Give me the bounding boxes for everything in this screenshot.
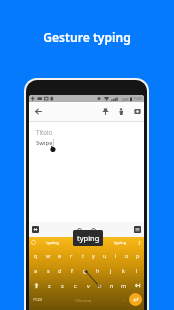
button[interactable]: j: [104, 263, 117, 278]
staticText: q: [34, 252, 38, 259]
button[interactable]: Back: [32, 105, 45, 118]
staticText: .: [123, 297, 125, 303]
button[interactable]: d: [54, 263, 66, 278]
staticText: x: [61, 282, 64, 289]
staticText: w: [46, 252, 51, 259]
button[interactable]: w: [42, 248, 54, 263]
staticText: s: [47, 267, 50, 274]
staticText: n: [110, 282, 114, 289]
button[interactable]: p: [132, 248, 143, 263]
staticText: e: [58, 252, 62, 259]
button[interactable]: Backspace: [130, 278, 144, 293]
button[interactable]: Pin: [99, 105, 112, 118]
button[interactable]: Chroma: [54, 293, 112, 306]
staticText: j: [110, 267, 112, 274]
button[interactable]: z: [43, 278, 56, 293]
button[interactable]: m: [118, 278, 130, 293]
button[interactable]: u: [99, 248, 110, 263]
staticText: m: [121, 282, 127, 289]
button[interactable]: k: [117, 263, 130, 278]
staticText: r: [70, 252, 73, 259]
staticText: l: [136, 267, 138, 274]
button[interactable]: x: [56, 278, 69, 293]
staticText: Swipe: [36, 139, 53, 147]
button[interactable]: i: [110, 248, 121, 263]
button[interactable]: y: [88, 248, 99, 263]
staticText: Chroma: [75, 297, 92, 303]
staticText: 11:21: [133, 96, 142, 101]
staticText: i: [115, 252, 117, 259]
staticText: a: [34, 267, 38, 274]
staticText: t: [82, 252, 84, 259]
staticText: typing: [36, 240, 69, 246]
staticText: ?123: [33, 297, 43, 303]
button[interactable]: a: [30, 263, 42, 278]
button[interactable]: v: [82, 278, 94, 293]
button[interactable]: l: [130, 263, 143, 278]
staticText: f: [71, 267, 73, 274]
button[interactable]: f: [66, 263, 78, 278]
button[interactable]: e: [54, 248, 66, 263]
staticText: h: [96, 267, 100, 274]
button[interactable]: q: [30, 248, 42, 263]
button[interactable]: Select all: [32, 226, 39, 233]
button[interactable]: Redo: [91, 226, 97, 232]
staticText: b: [98, 282, 102, 289]
button[interactable]: c: [69, 278, 82, 293]
staticText: v: [87, 282, 90, 289]
button[interactable]: t: [77, 248, 88, 263]
button[interactable]: n: [106, 278, 118, 293]
staticText: k: [122, 267, 125, 274]
button[interactable]: More: [131, 105, 144, 118]
staticText: typing: [77, 233, 100, 243]
button[interactable]: g: [78, 263, 91, 278]
staticText: p: [136, 252, 140, 259]
staticText: d: [58, 267, 62, 274]
staticText: o: [125, 252, 129, 259]
staticText: u: [103, 252, 107, 259]
staticText: typing: [69, 240, 103, 246]
staticText: z: [48, 282, 51, 289]
staticText: typing: [103, 240, 137, 246]
button[interactable]: Pen: [115, 105, 128, 118]
button[interactable]: r: [66, 248, 77, 263]
button[interactable]: Enter: [129, 293, 142, 306]
staticText: Gesture typing: [0, 29, 174, 45]
button[interactable]: s: [42, 263, 54, 278]
button[interactable]: b: [94, 278, 106, 293]
button[interactable]: Undo: [76, 226, 82, 232]
staticText: 26%: [122, 97, 129, 101]
staticText: Titolo: [36, 128, 53, 136]
button[interactable]: h: [91, 263, 104, 278]
button[interactable]: o: [121, 248, 132, 263]
button[interactable]: Keyboard options: [134, 226, 141, 233]
staticText: c: [74, 282, 77, 289]
staticText: y: [92, 252, 95, 259]
button[interactable]: Shift: [29, 278, 43, 293]
staticText: g: [83, 267, 87, 274]
button[interactable]: .: [121, 295, 127, 305]
button[interactable]: ?123: [31, 295, 45, 305]
